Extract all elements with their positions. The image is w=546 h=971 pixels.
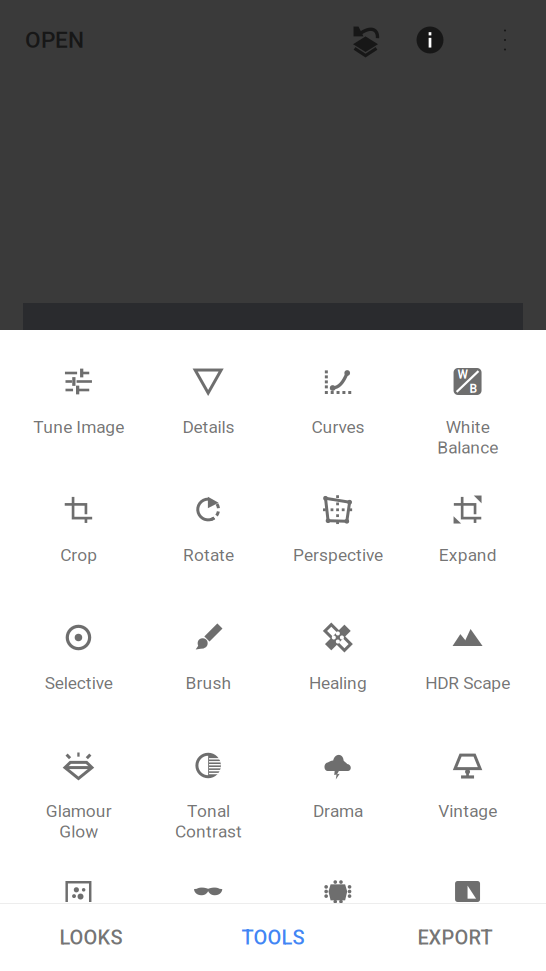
button[interactable]: Details [143, 330, 273, 458]
staticText: EXPORT [417, 926, 492, 949]
staticText: Expand [438, 545, 496, 565]
staticText: Brush [185, 673, 231, 693]
button[interactable]: Info [396, 0, 464, 80]
button[interactable]: Tonal Contrast [143, 714, 273, 842]
staticText: Rotate [183, 545, 234, 565]
button[interactable]: Perspective [273, 458, 403, 586]
staticText: Tonal Contrast [175, 801, 242, 842]
staticText: Glamour Glow [45, 801, 111, 842]
staticText: White Balance [437, 417, 498, 458]
button[interactable]: Rotate [143, 458, 273, 586]
button[interactable]: HDR Scape [403, 586, 532, 714]
staticText: Crop [60, 545, 97, 565]
button[interactable]: TOOLS [182, 904, 364, 971]
button[interactable]: Undo [334, 0, 396, 80]
staticText: Selective [44, 673, 112, 693]
button[interactable]: EXPORT [364, 904, 546, 971]
staticText: Vintage [438, 801, 497, 821]
staticText: OPEN [25, 27, 84, 53]
staticText: Details [182, 417, 234, 437]
button[interactable]: Drama [273, 714, 403, 842]
staticText: Tune Image [33, 417, 124, 437]
staticText: B [469, 381, 477, 396]
staticText: W [457, 367, 468, 381]
button[interactable]: Crop [14, 458, 143, 586]
button[interactable]: LOOKS [0, 904, 182, 971]
button[interactable]: Frames [403, 842, 532, 903]
staticText: LOOKS [59, 926, 122, 949]
staticText: Healing [309, 673, 367, 693]
staticText: Drama [313, 801, 363, 821]
staticText: TOOLS [241, 926, 304, 949]
staticText: HDR Scape [425, 673, 510, 693]
button[interactable]: Tune Image [14, 330, 143, 458]
button[interactable]: Grunge [273, 842, 403, 903]
button[interactable]: Retrolux [143, 842, 273, 903]
staticText: Perspective [293, 545, 383, 565]
button[interactable]: Expand [403, 458, 532, 586]
button[interactable]: OPEN [0, 0, 84, 80]
staticText: Curves [311, 417, 364, 437]
button[interactable]: W [403, 330, 532, 458]
button[interactable]: Brush [143, 586, 273, 714]
button[interactable]: Healing [273, 586, 403, 714]
button[interactable]: Grainy Film [14, 842, 143, 903]
button[interactable]: Selective [14, 586, 143, 714]
button[interactable]: Glamour Glow [14, 714, 143, 842]
button[interactable]: Vintage [403, 714, 532, 842]
button[interactable]: Curves [273, 330, 403, 458]
